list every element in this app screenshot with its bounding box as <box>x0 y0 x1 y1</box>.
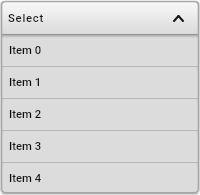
button[interactable]: Item 2 <box>0 98 200 130</box>
other: Collapse the list <box>173 15 184 22</box>
staticText: Item 3 <box>9 140 42 153</box>
staticText: Item 1 <box>9 76 42 89</box>
staticText: Item 4 <box>9 172 42 185</box>
button[interactable]: Item 4 <box>0 162 200 194</box>
button[interactable]: Select <box>0 0 200 34</box>
staticText: Item 2 <box>9 108 42 121</box>
button[interactable]: Item 1 <box>0 66 200 98</box>
button[interactable]: Item 0 <box>0 34 200 66</box>
button[interactable]: Item 3 <box>0 130 200 162</box>
staticText: Item 0 <box>9 44 42 57</box>
staticText: Select <box>8 12 45 25</box>
